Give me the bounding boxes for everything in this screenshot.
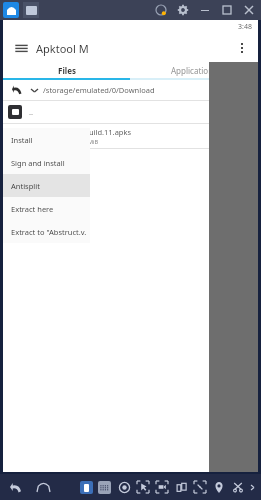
- button[interactable]: Pointer: [136, 480, 150, 494]
- button[interactable]: Record: [117, 480, 131, 494]
- staticText: /storage/emulated/0/Download: [43, 85, 155, 95]
- button[interactable]: Minimize: [197, 2, 213, 18]
- staticText: Sign and install: [11, 158, 65, 168]
- staticText: Install: [11, 135, 33, 145]
- button[interactable]: Abstruct.ver.1.2.build.11.apks: [3, 124, 258, 148]
- button[interactable]: Phone mode: [80, 481, 93, 494]
- button[interactable]: Cut: [231, 480, 245, 494]
- button[interactable]: Maximize: [219, 2, 235, 18]
- button[interactable]: Keyboard: [98, 481, 111, 494]
- button[interactable]: Files: [3, 62, 130, 78]
- button[interactable]: Settings: [175, 2, 191, 18]
- button[interactable]: Location: [212, 480, 226, 494]
- button[interactable]: Menu: [11, 38, 31, 58]
- staticText: Files: [58, 65, 76, 76]
- button[interactable]: Account: [153, 2, 169, 18]
- button[interactable]: More options: [232, 38, 252, 58]
- staticText: Applications: [171, 65, 217, 76]
- button[interactable]: Applications: [130, 62, 258, 78]
- button[interactable]: Home: [34, 478, 52, 496]
- button[interactable]: App tab: [23, 2, 39, 18]
- button[interactable]: Back: [3, 80, 258, 100]
- staticText: Extract here: [11, 204, 54, 214]
- button[interactable]: Home: [3, 2, 19, 18]
- other: Back: [9, 82, 25, 98]
- staticText: 2020/04/21 13:39, 4.75 MiB: [28, 138, 98, 145]
- staticText: 3:48: [238, 22, 252, 32]
- button[interactable]: Close: [241, 2, 257, 18]
- button[interactable]: Install: [3, 128, 90, 151]
- staticText: Abstruct.ver.1.2.build.11.apks: [28, 127, 132, 137]
- button[interactable]: More: [248, 483, 257, 492]
- button[interactable]: Rotate: [174, 480, 188, 494]
- staticText: ..: [29, 107, 34, 117]
- staticText: Apktool M: [36, 41, 89, 56]
- staticText: Extract to "Abstruct.v.: [11, 227, 87, 237]
- button[interactable]: Extract here: [3, 197, 90, 220]
- button[interactable]: Extract to "Abstruct.v.: [3, 220, 90, 243]
- button[interactable]: ..: [3, 101, 258, 123]
- button[interactable]: Fullscreen: [193, 480, 207, 494]
- button[interactable]: Back: [6, 478, 24, 496]
- button[interactable]: Antisplit: [3, 174, 90, 197]
- staticText: Antisplit: [11, 181, 40, 191]
- button[interactable]: Sign and install: [3, 151, 90, 174]
- button[interactable]: Video: [155, 480, 169, 494]
